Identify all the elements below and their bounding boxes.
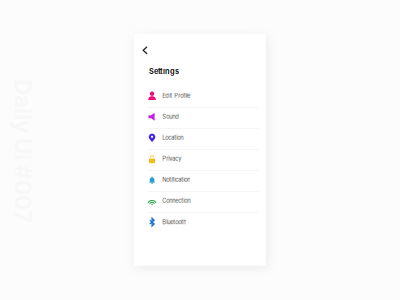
staticText: Bluetooth <box>162 219 186 225</box>
staticText: Edit Profile <box>162 92 190 99</box>
staticText: Connection <box>162 197 190 204</box>
button[interactable]: Edit Profile <box>134 87 265 108</box>
staticText: Sound <box>162 113 179 120</box>
button[interactable]: Location <box>134 129 265 150</box>
button[interactable]: Privacy <box>134 150 265 171</box>
button[interactable]: Connection <box>134 192 265 213</box>
staticText: Notification <box>162 176 190 183</box>
button[interactable]: Sound <box>134 108 265 129</box>
staticText: Location <box>162 134 183 141</box>
button[interactable]: Notification <box>134 171 265 192</box>
button[interactable]: Bluetooth <box>134 213 265 234</box>
button[interactable]: Back <box>138 43 152 57</box>
staticText: Settings <box>149 67 179 76</box>
staticText: Privacy <box>162 155 181 162</box>
